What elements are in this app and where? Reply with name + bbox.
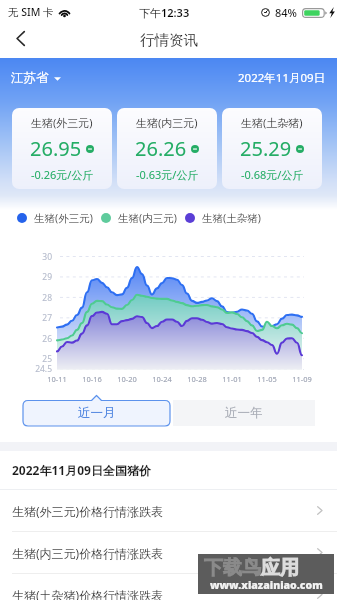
staticText: 30 xyxy=(22,251,52,263)
staticText: 无 SIM 卡 xyxy=(8,5,54,19)
staticText: 生猪(外三元) xyxy=(31,115,93,130)
staticText: 行情资讯 xyxy=(140,31,198,49)
staticText: 28 xyxy=(22,292,52,304)
button[interactable]: 生猪(内三元)价格行情涨跌表 xyxy=(0,532,337,573)
staticText: 生猪(内三元) xyxy=(136,115,198,130)
staticText: 11-05 xyxy=(252,374,282,384)
staticText: 下载鸟 xyxy=(204,556,261,580)
staticText: 26.26 xyxy=(135,135,187,162)
staticText: 10-16 xyxy=(77,374,107,384)
staticText: 应用 xyxy=(261,556,299,580)
staticText: -0.26元/公斤 xyxy=(31,167,94,182)
staticText: 生猪(内三元)价格行情涨跌表 xyxy=(12,545,164,561)
staticText: 下午12:33 xyxy=(139,5,190,20)
button[interactable]: 生猪(土杂猪) xyxy=(222,108,322,189)
staticText: 生猪(土杂猪) xyxy=(241,115,303,130)
staticText: 生猪(土杂猪) xyxy=(202,211,261,225)
button[interactable]: Back xyxy=(5,23,35,53)
staticText: 24.5 xyxy=(22,363,52,375)
button[interactable]: 生猪(内三元) xyxy=(117,108,217,189)
staticText: 10-24 xyxy=(147,374,177,384)
staticText: 26.95 xyxy=(30,135,82,162)
staticText: 25 xyxy=(22,353,52,365)
button[interactable]: 江苏省 xyxy=(11,68,61,88)
staticText: 近一月 xyxy=(78,405,116,421)
button[interactable]: 近一年 xyxy=(173,400,315,426)
staticText: 11-01 xyxy=(217,374,247,384)
staticText: 江苏省 xyxy=(11,70,49,86)
staticText: 10-11 xyxy=(42,374,72,384)
staticText: -0.63元/公斤 xyxy=(136,167,199,182)
staticText: 26 xyxy=(22,333,52,345)
staticText: 2022年11月09日全国猪价 xyxy=(12,462,151,478)
staticText: 84% xyxy=(275,5,297,20)
staticText: 10-20 xyxy=(112,374,142,384)
staticText: 10-28 xyxy=(182,374,212,384)
staticText: 29 xyxy=(22,271,52,283)
staticText: 生猪(外三元)价格行情涨跌表 xyxy=(12,503,164,519)
staticText: 生猪(内三元) xyxy=(118,211,177,225)
staticText: 近一年 xyxy=(225,405,263,421)
staticText: 25.29 xyxy=(240,135,292,162)
button[interactable]: 生猪(土杂猪)价格行情涨跌表 xyxy=(0,574,337,600)
staticText: 生猪(土杂猪)价格行情涨跌表 xyxy=(12,587,164,600)
button[interactable]: 近一月 xyxy=(23,396,170,426)
button[interactable]: 生猪(外三元) xyxy=(12,108,112,189)
staticText: www.xiazainiao.com xyxy=(210,578,323,592)
button[interactable]: 生猪(外三元)价格行情涨跌表 xyxy=(0,490,337,531)
staticText: 2022年11月09日 xyxy=(238,70,326,86)
staticText: 生猪(外三元) xyxy=(34,211,93,225)
staticText: 11-09 xyxy=(287,374,317,384)
staticText: 27 xyxy=(22,312,52,324)
staticText: -0.68元/公斤 xyxy=(241,167,304,182)
